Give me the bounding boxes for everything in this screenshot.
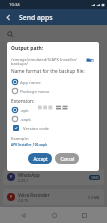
staticText: Cancel: [60, 156, 75, 162]
staticText: 2.23.1: [18, 178, 28, 183]
button[interactable]: WhatsApp: [3, 169, 104, 185]
staticText: Package name: [20, 88, 50, 94]
staticText: .xapk: [20, 116, 31, 122]
button[interactable]: Accept: [28, 153, 52, 164]
staticText: .apk: [20, 107, 29, 113]
staticText: SEND: [91, 176, 99, 180]
staticText: WhatsApp: [18, 172, 40, 178]
staticText: APK Installer_100.xapk: [11, 143, 47, 147]
button[interactable]: .apk: [11, 105, 29, 114]
staticText: Voice Recorder: [18, 192, 50, 198]
button[interactable]: Cancel: [55, 153, 79, 164]
button[interactable]: Version code: [11, 123, 49, 132]
button[interactable]: Home: [47, 208, 61, 222]
staticText: 2.0.15: [18, 198, 28, 203]
staticText: 5.3 MB: [88, 195, 100, 200]
staticText: 10:34: [9, 2, 20, 8]
button[interactable]: Package name: [11, 86, 50, 95]
button[interactable]: Voice Recorder: [3, 189, 104, 205]
staticText: Send apps: [19, 13, 53, 22]
staticText: Output path:: [11, 45, 44, 52]
staticText: Example:: [11, 136, 29, 142]
staticText: App name: [20, 79, 41, 85]
staticText: Version code: [23, 125, 49, 131]
button[interactable]: SEND: [89, 175, 100, 180]
button[interactable]: Back: [16, 208, 30, 222]
staticText: Extension:: [11, 98, 35, 105]
button[interactable]: Search: [5, 29, 15, 39]
staticText: Accept: [33, 156, 48, 162]
button[interactable]: Recent apps: [77, 208, 91, 222]
staticText: Name format for the backup file:: [11, 68, 85, 75]
button[interactable]: .xapk: [11, 114, 31, 123]
button[interactable]: App name: [11, 77, 41, 86]
button[interactable]: Choose folder: [83, 53, 97, 67]
staticText: /storage/emulated/0/APK Installer/ backu…: [11, 57, 77, 66]
button[interactable]: Back: [0, 9, 16, 25]
